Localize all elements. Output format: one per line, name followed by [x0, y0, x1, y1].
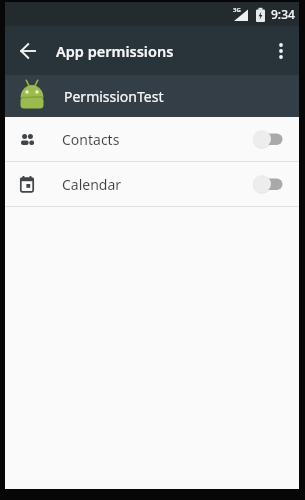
staticText: PermissionTest	[64, 87, 164, 106]
button[interactable]: Contacts	[5, 117, 299, 161]
staticText: 9:34	[271, 6, 295, 22]
button[interactable]: PermissionTest	[5, 75, 299, 117]
staticText: App permissions	[56, 41, 174, 61]
button[interactable]	[253, 130, 283, 148]
staticText: Contacts	[62, 130, 120, 149]
button[interactable]: Calendar	[5, 162, 299, 206]
button[interactable]	[13, 36, 43, 66]
staticText: 3G	[233, 6, 241, 14]
button[interactable]	[270, 40, 292, 62]
staticText: Calendar	[62, 175, 122, 194]
button[interactable]	[253, 175, 283, 193]
